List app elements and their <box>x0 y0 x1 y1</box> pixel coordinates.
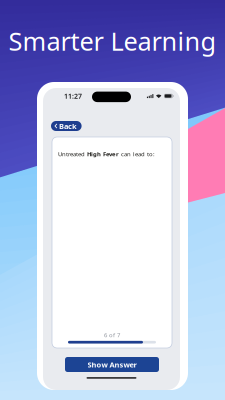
staticText: Show Answer <box>87 359 136 370</box>
button[interactable]: Show Answer <box>65 357 159 372</box>
staticText: Back <box>59 121 77 131</box>
button[interactable]: Back <box>51 121 82 131</box>
staticText: Untreated High Fever can lead to: <box>58 150 155 158</box>
staticText: 6 of 7 <box>104 331 120 339</box>
staticText: Smarter Learning <box>8 24 216 58</box>
staticText: 11:27 <box>64 91 82 101</box>
